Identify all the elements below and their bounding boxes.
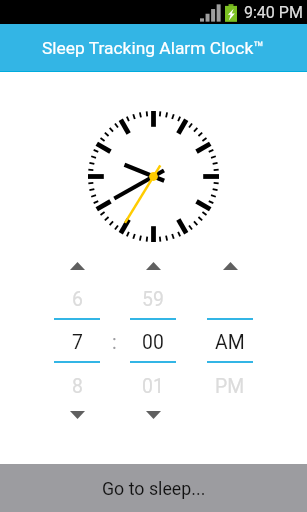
staticText: 59: [142, 288, 164, 311]
button[interactable]: Decrease minute: [131, 404, 175, 426]
staticText: :: [112, 331, 117, 354]
button[interactable]: 7: [39, 331, 115, 354]
staticText: 01: [142, 375, 164, 398]
staticText: 6: [72, 288, 83, 311]
staticText: 8: [72, 375, 83, 398]
button[interactable]: Increase minute: [131, 255, 175, 277]
staticText: AM: [215, 331, 245, 354]
button[interactable]: Decrease hour: [55, 404, 99, 426]
button[interactable]: Increase hour: [55, 255, 99, 277]
staticText: Go to sleep...: [102, 478, 206, 499]
staticText: PM: [215, 375, 245, 398]
button[interactable]: 00: [115, 331, 191, 354]
button[interactable]: Go to sleep...: [0, 464, 307, 512]
button[interactable]: Increase AM or PM: [208, 255, 252, 277]
staticText: 7: [72, 331, 83, 354]
button[interactable]: AM: [192, 331, 268, 354]
staticText: 9:40 PM: [244, 3, 303, 22]
staticText: 00: [142, 331, 164, 354]
staticText: Sleep Tracking Alarm Clock™: [42, 38, 265, 58]
